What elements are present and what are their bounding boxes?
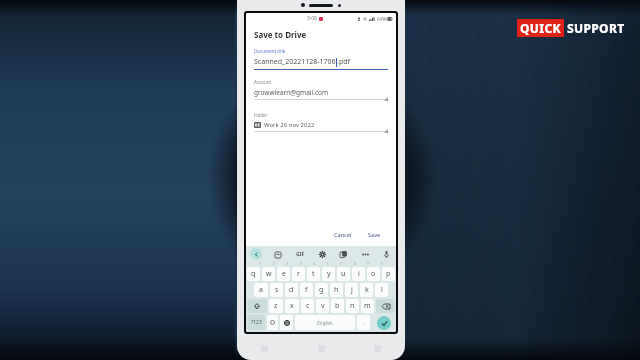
staticText: Work 26 nov 2022: [264, 121, 315, 129]
button[interactable]: Stickers: [272, 249, 283, 260]
staticText: English: [317, 320, 333, 326]
button[interactable]: Settings: [317, 249, 328, 260]
button[interactable]: s: [270, 283, 283, 297]
button[interactable]: Shift: [247, 299, 267, 313]
staticText: 3: [286, 262, 288, 266]
button[interactable]: p: [382, 267, 395, 281]
staticText: s: [275, 285, 279, 295]
staticText: GIF: [296, 251, 305, 258]
staticText: 64%: [377, 16, 386, 22]
staticText: Folder: [254, 112, 268, 118]
button[interactable]: n: [346, 299, 359, 313]
button[interactable]: a: [254, 283, 268, 297]
button[interactable]: Save: [363, 228, 386, 241]
button[interactable]: Emoji: [267, 315, 278, 330]
button[interactable]: Back: [250, 248, 262, 260]
button[interactable]: c: [301, 299, 314, 313]
staticText: Cancel: [334, 231, 352, 238]
staticText: l: [381, 285, 383, 295]
staticText: growwlearn@gmail.com: [254, 88, 329, 97]
button[interactable]: Folder: [246, 112, 396, 135]
staticText: 0: [381, 262, 383, 266]
button[interactable]: More options: [360, 249, 371, 260]
staticText: e: [282, 269, 286, 279]
button[interactable]: q: [247, 267, 260, 281]
staticText: SUPPORT: [567, 20, 625, 36]
button[interactable]: m: [361, 299, 374, 313]
button[interactable]: e: [277, 267, 290, 281]
staticText: .: [363, 319, 365, 327]
button[interactable]: Clipboard: [338, 249, 349, 260]
button[interactable]: r: [292, 267, 305, 281]
staticText: r: [297, 269, 300, 279]
button[interactable]: GIF: [294, 249, 307, 260]
button[interactable]: English: [295, 315, 355, 330]
staticText: k: [365, 285, 369, 295]
staticText: 1: [259, 262, 261, 266]
staticText: t: [312, 269, 315, 279]
staticText: o: [371, 269, 376, 279]
staticText: Save: [368, 231, 381, 238]
button[interactable]: x: [285, 299, 299, 313]
staticText: 9: [367, 262, 369, 266]
button[interactable]: h: [330, 283, 343, 297]
button[interactable]: Change language: [280, 315, 293, 330]
staticText: z: [274, 301, 278, 311]
button[interactable]: j: [345, 283, 358, 297]
button[interactable]: y: [322, 267, 335, 281]
staticText: 3:06: [307, 15, 317, 22]
button[interactable]: f: [300, 283, 313, 297]
staticText: g: [319, 285, 324, 295]
button[interactable]: Backspace: [376, 299, 395, 313]
staticText: .pdf: [337, 57, 350, 67]
button[interactable]: t: [307, 267, 320, 281]
staticText: p: [386, 269, 391, 279]
button[interactable]: k: [360, 283, 373, 297]
button[interactable]: Voice input: [381, 249, 392, 260]
staticText: Document title: [254, 48, 286, 54]
button[interactable]: l: [375, 283, 388, 297]
button[interactable]: ?123: [247, 315, 265, 330]
staticText: y: [327, 269, 331, 279]
staticText: u: [341, 269, 346, 279]
button[interactable]: g: [315, 283, 328, 297]
button[interactable]: o: [367, 267, 380, 281]
button[interactable]: z: [269, 299, 283, 313]
staticText: ?123: [251, 319, 262, 326]
button[interactable]: .: [357, 315, 370, 330]
staticText: b: [335, 301, 340, 311]
staticText: 4: [300, 262, 302, 266]
staticText: 5: [313, 262, 315, 266]
staticText: h: [334, 285, 339, 295]
staticText: 2: [273, 262, 275, 266]
button[interactable]: u: [337, 267, 350, 281]
staticText: Scanned_20221128-1706: [254, 57, 336, 67]
staticText: v: [321, 301, 325, 311]
button[interactable]: Cancel: [329, 228, 357, 241]
staticText: d: [289, 285, 294, 295]
staticText: i: [358, 269, 360, 279]
staticText: 8: [354, 262, 356, 266]
staticText: j: [351, 285, 353, 295]
staticText: n: [350, 301, 355, 311]
button[interactable]: Account: [246, 79, 396, 103]
staticText: m: [364, 301, 371, 311]
staticText: Account: [254, 79, 272, 85]
button[interactable]: w: [262, 267, 275, 281]
staticText: 7: [340, 262, 342, 266]
staticText: x: [290, 301, 294, 311]
staticText: QUICK: [520, 20, 561, 36]
button[interactable]: v: [316, 299, 329, 313]
button[interactable]: Done: [372, 315, 395, 330]
button[interactable]: b: [331, 299, 344, 313]
staticText: 6: [327, 262, 329, 266]
staticText: c: [306, 301, 310, 311]
staticText: w: [266, 269, 272, 279]
staticText: f: [305, 285, 308, 295]
staticText: q: [251, 269, 256, 279]
button[interactable]: d: [285, 283, 298, 297]
staticText: Save to Drive: [254, 29, 307, 40]
button[interactable]: i: [352, 267, 365, 281]
staticText: a: [259, 285, 263, 295]
